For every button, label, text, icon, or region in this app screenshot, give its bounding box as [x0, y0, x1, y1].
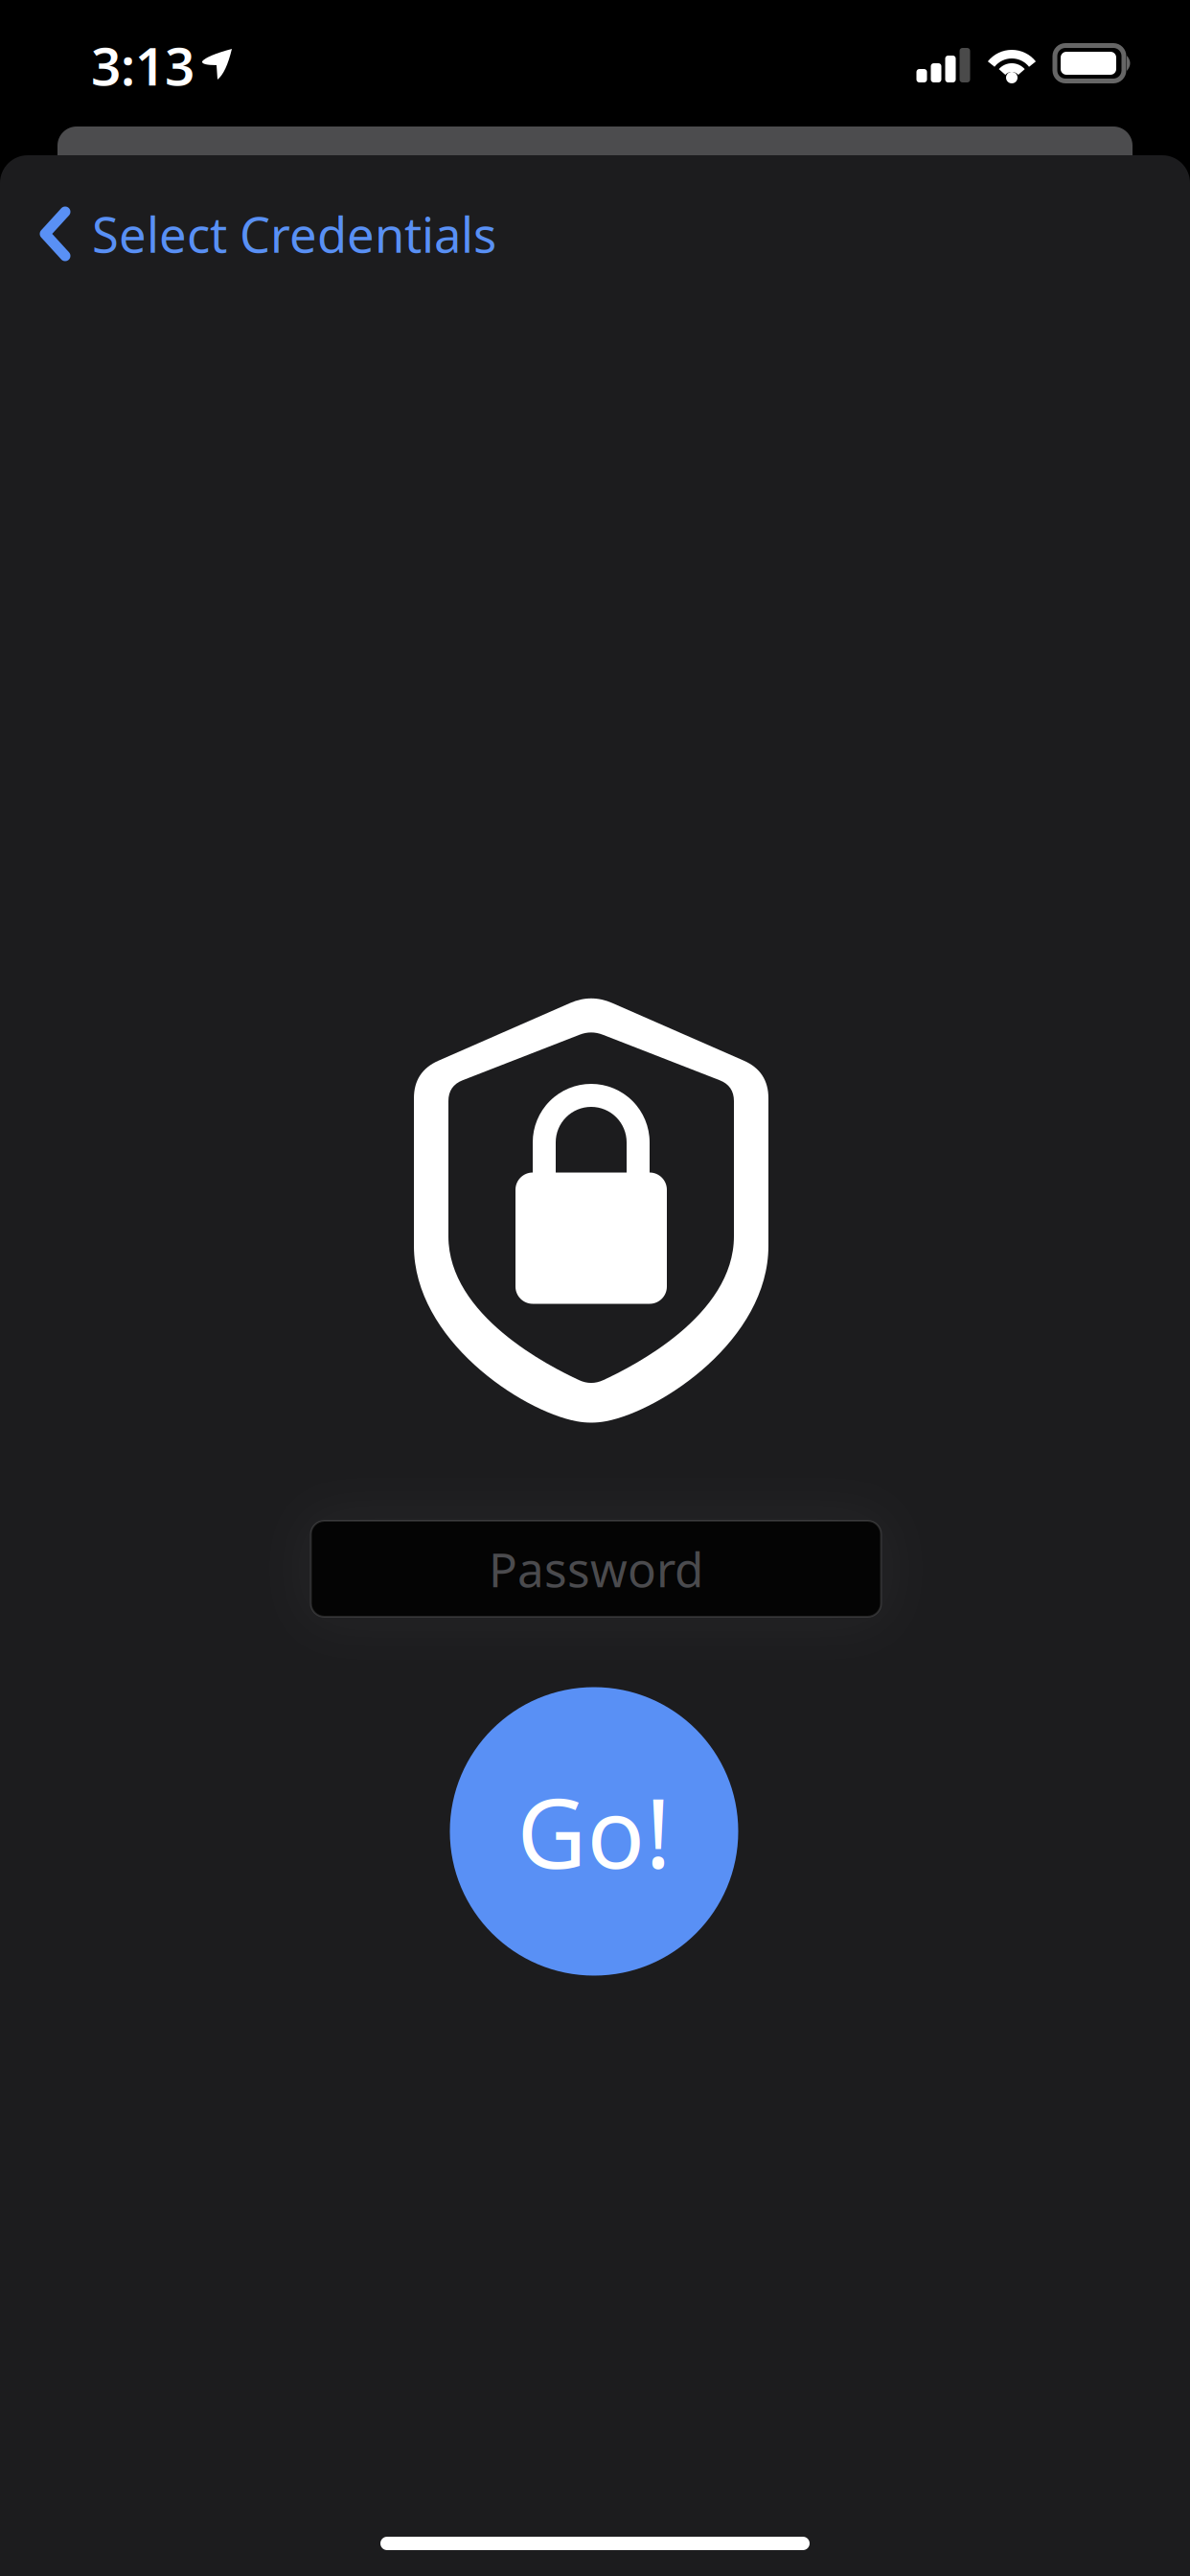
button[interactable]: Go! [450, 1687, 738, 1976]
staticText: Password [489, 1537, 703, 1600]
button[interactable]: Password [311, 1521, 881, 1617]
button[interactable]: Back to Select Credentials [0, 181, 517, 287]
staticText: Go! [517, 1768, 671, 1895]
staticText: 3:13 [91, 30, 195, 100]
staticText: Select Credentials [92, 202, 496, 266]
